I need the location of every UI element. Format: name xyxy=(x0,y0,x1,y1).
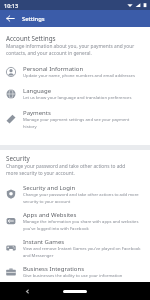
staticText: Manage your payment settings and see you… xyxy=(23,117,143,129)
staticText: Security xyxy=(6,154,30,163)
staticText: Security and Login xyxy=(23,184,76,192)
staticText: Manage the information you share with ap… xyxy=(23,219,143,231)
button[interactable]: Security and Login xyxy=(0,180,150,207)
staticText: Change your password and take other acti… xyxy=(6,163,138,177)
staticText: Give businesses the ability to use your … xyxy=(23,273,123,279)
button[interactable]: Language xyxy=(0,83,150,105)
staticText: Change your password and take other acti… xyxy=(23,192,143,204)
staticText: Settings xyxy=(22,15,45,23)
button[interactable]: Personal Information xyxy=(0,61,150,83)
staticText: Language xyxy=(23,87,52,95)
button[interactable]: Back xyxy=(22,286,32,296)
staticText: Personal Information xyxy=(23,65,84,73)
staticText: Update your name, phone numbers and emai… xyxy=(23,73,135,79)
button[interactable]: Home xyxy=(63,290,87,293)
button[interactable]: Apps and Websites xyxy=(0,207,150,234)
staticText: Business Integrations xyxy=(23,265,85,273)
staticText: Payments xyxy=(23,109,51,117)
staticText: View and remove Instant Games you've pla… xyxy=(23,246,143,258)
staticText: Account Settings xyxy=(6,34,56,43)
staticText: 10:13 xyxy=(4,2,19,9)
staticText: Manage information about you, your payme… xyxy=(6,43,138,57)
button[interactable]: Back xyxy=(4,12,17,25)
staticText: Apps and Websites xyxy=(23,211,77,219)
button[interactable]: Business Integrations xyxy=(0,261,150,282)
staticText: Let us know your language and translatio… xyxy=(23,95,132,101)
staticText: Instant Games xyxy=(23,238,65,246)
button[interactable]: Payments xyxy=(0,105,150,132)
button[interactable]: Instant Games xyxy=(0,234,150,261)
